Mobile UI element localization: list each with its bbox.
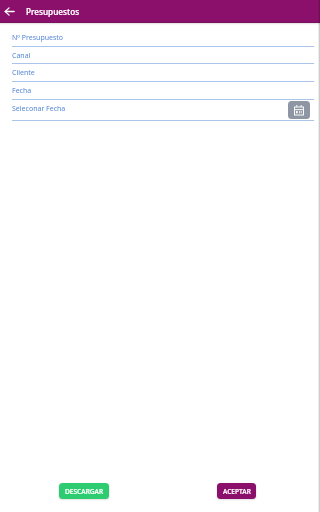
button[interactable]: Select date: [288, 101, 310, 119]
staticText: Fecha: [12, 86, 32, 96]
staticText: Presupuestos: [26, 6, 80, 17]
staticText: Seleconar Fecha: [12, 104, 66, 114]
staticText: Canal: [12, 51, 31, 61]
button[interactable]: [0, 68, 320, 81]
staticText: DESCARGAR: [65, 487, 104, 496]
staticText: ACEPTAR: [223, 487, 251, 496]
button[interactable]: ACEPTAR: [217, 483, 256, 499]
staticText: Cliente: [12, 68, 35, 78]
button[interactable]: [0, 33, 320, 47]
button[interactable]: [0, 86, 320, 100]
button[interactable]: DESCARGAR: [59, 483, 109, 499]
button[interactable]: [0, 50, 320, 63]
staticText: Nº Presupuesto: [12, 33, 64, 43]
button[interactable]: [0, 104, 320, 121]
button[interactable]: Back: [0, 0, 19, 23]
